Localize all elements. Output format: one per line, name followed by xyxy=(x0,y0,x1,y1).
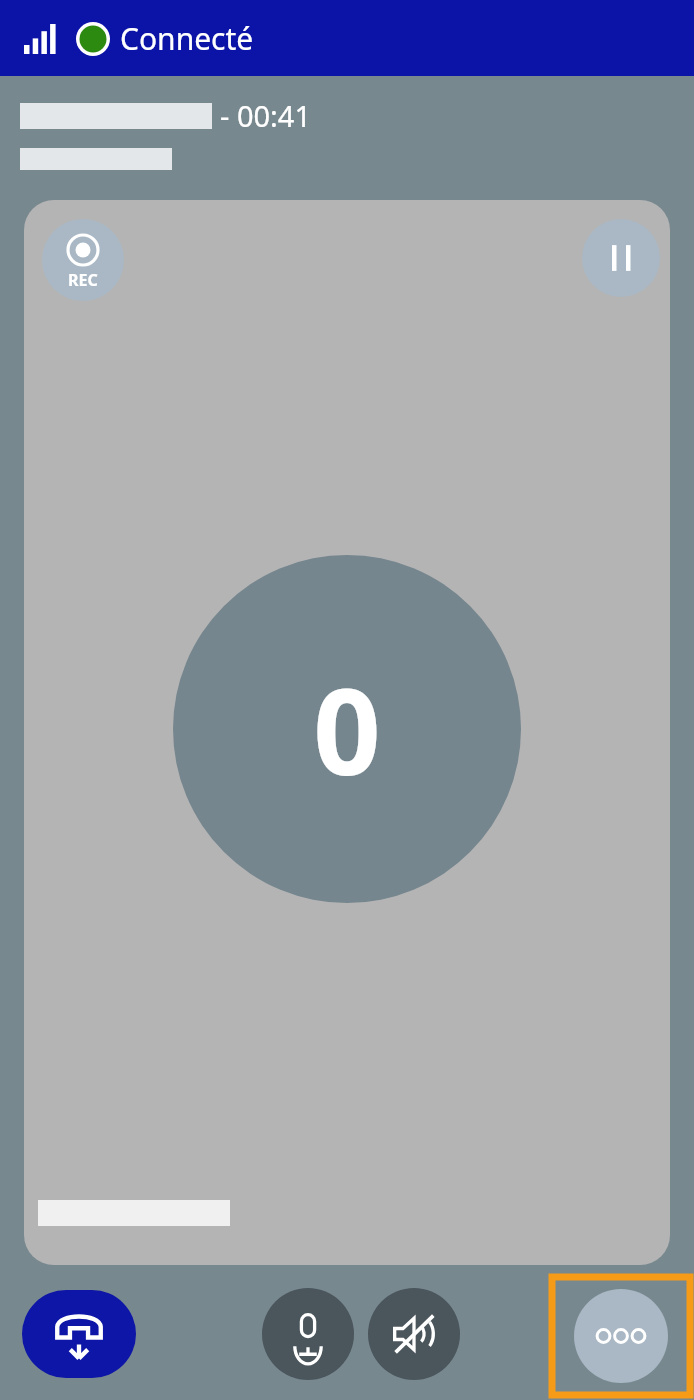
staticText: Connecté xyxy=(120,18,254,59)
button[interactable]: 0 xyxy=(173,555,521,903)
button[interactable]: Pause xyxy=(582,219,660,297)
button[interactable]: Speaker off xyxy=(368,1288,460,1380)
button[interactable]: More options xyxy=(552,1277,690,1395)
button[interactable]: Record xyxy=(42,219,124,301)
staticText: 0 xyxy=(313,649,381,810)
staticText: REC xyxy=(68,269,98,291)
button[interactable]: Hang up xyxy=(22,1290,136,1378)
staticText: - 00:41 xyxy=(220,96,312,135)
button[interactable]: Mute microphone xyxy=(262,1288,354,1380)
